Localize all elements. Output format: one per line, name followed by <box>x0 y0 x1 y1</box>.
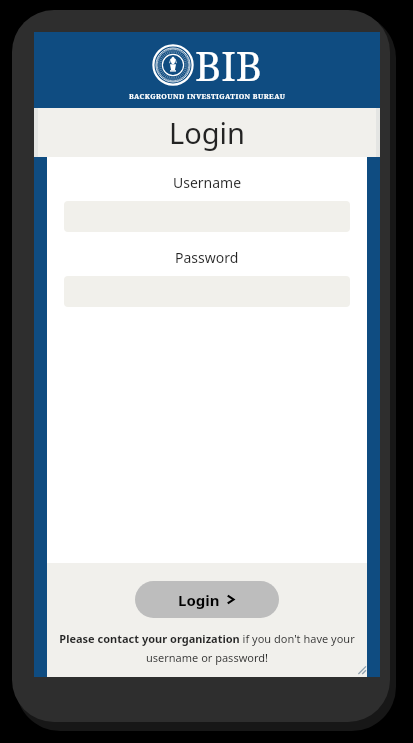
staticText: Please contact your organization if you … <box>53 631 361 665</box>
staticText: Username <box>173 173 242 192</box>
staticText: Login <box>178 590 220 610</box>
staticText: BACKGROUND INVESTIGATION BUREAU <box>129 92 286 102</box>
staticText: Login <box>169 113 245 152</box>
button[interactable]: Login <box>135 581 279 618</box>
staticText: BIB <box>195 38 262 92</box>
staticText: Password <box>175 248 239 267</box>
